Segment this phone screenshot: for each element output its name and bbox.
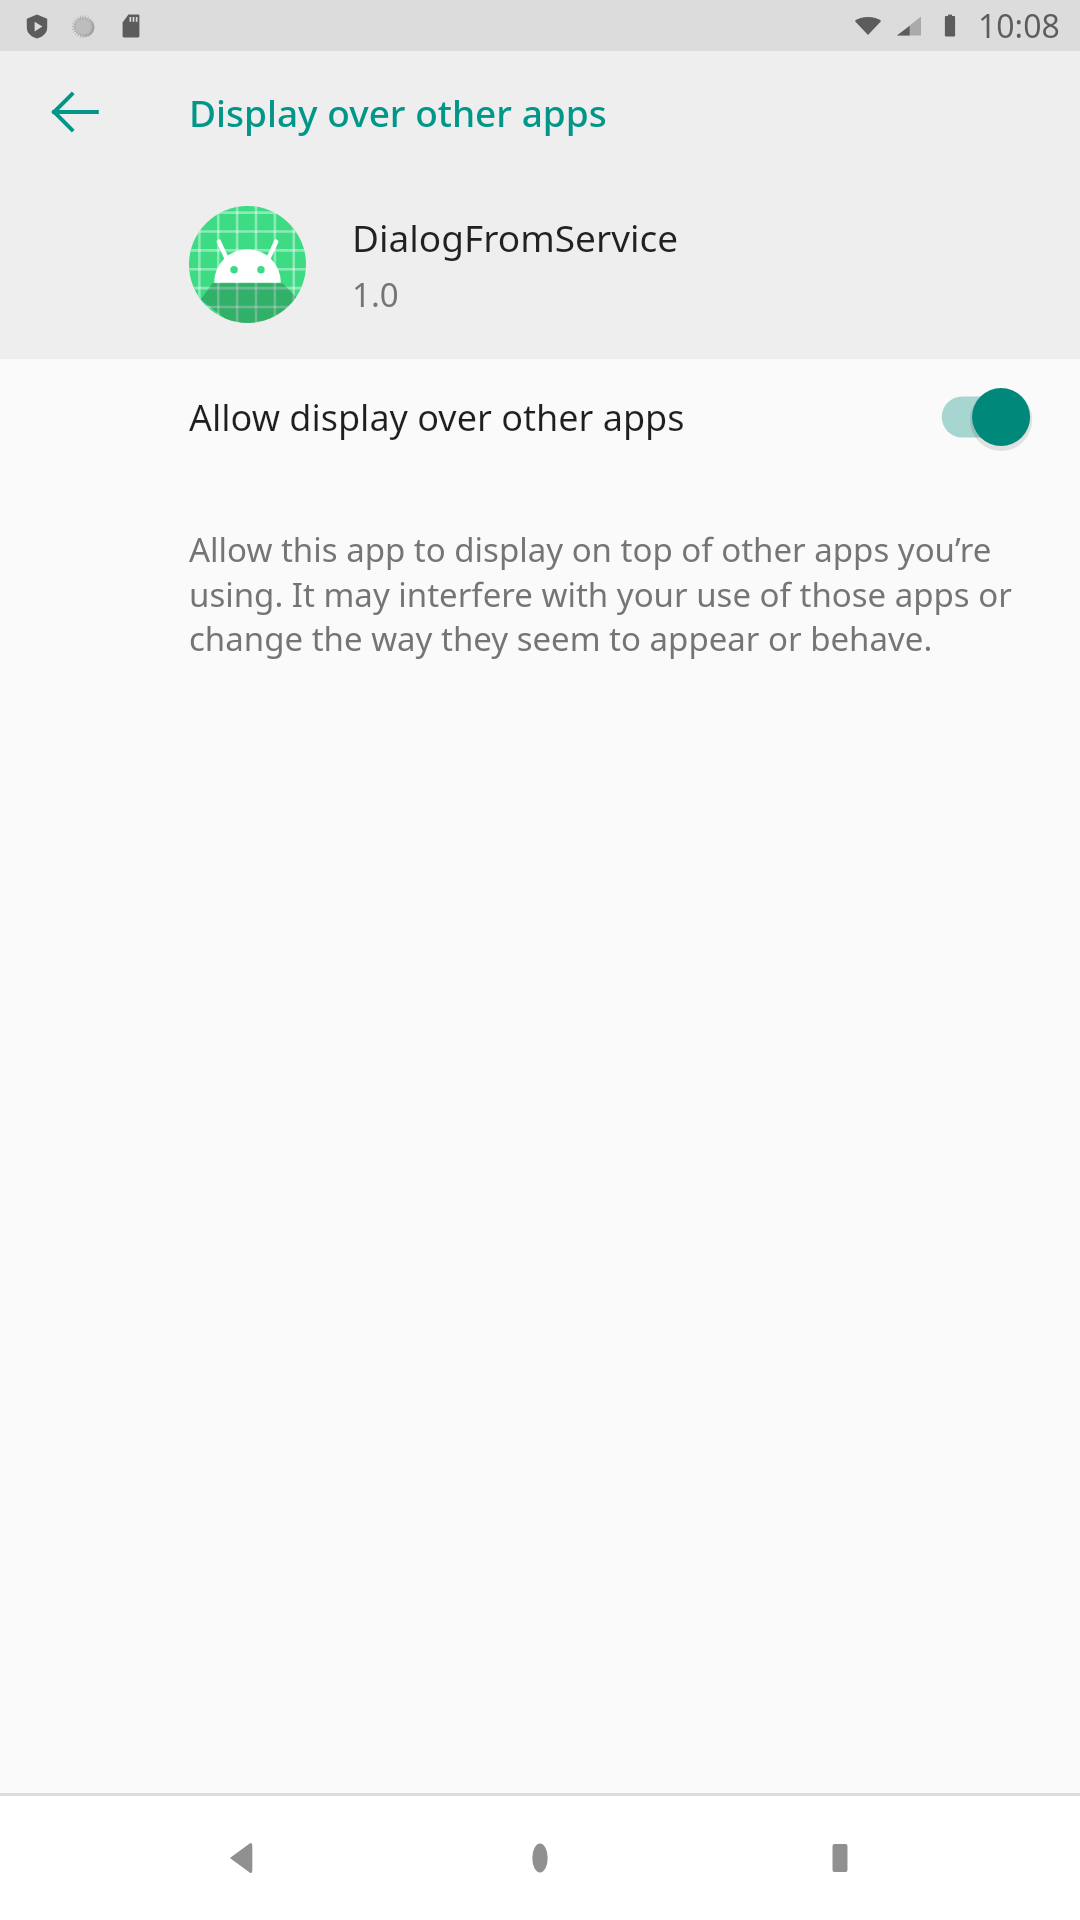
staticText: 1.0: [352, 272, 399, 317]
staticText: Allow this app to display on top of othe…: [189, 527, 1044, 660]
button[interactable]: Home: [480, 1798, 600, 1918]
staticText: 10:08: [978, 4, 1060, 48]
staticText: Display over other apps: [189, 87, 607, 137]
button[interactable]: Navigate up: [28, 65, 122, 159]
button[interactable]: Allow display over other apps: [0, 359, 1080, 475]
button[interactable]: Recent apps: [780, 1798, 900, 1918]
button[interactable]: Back: [180, 1798, 300, 1918]
staticText: Allow display over other apps: [189, 393, 938, 442]
staticText: DialogFromService: [352, 212, 679, 262]
